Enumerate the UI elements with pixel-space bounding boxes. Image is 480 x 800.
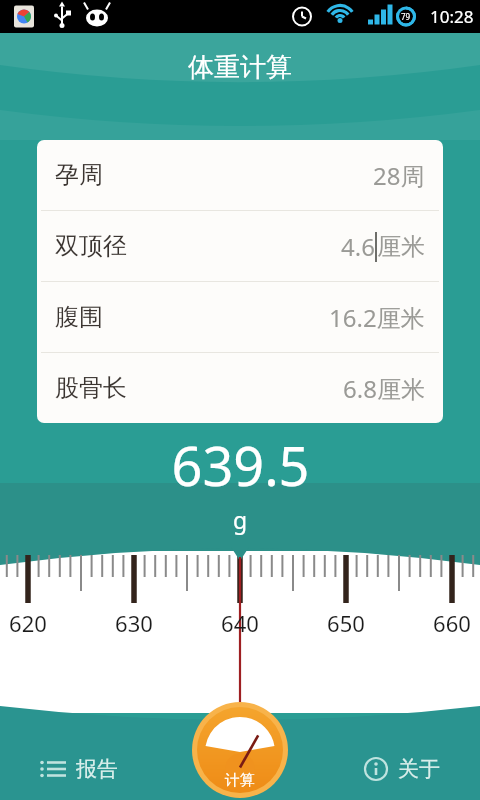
staticText: g: [233, 504, 248, 535]
button[interactable]: 关于: [364, 756, 440, 782]
staticText: 孕周: [55, 160, 103, 190]
staticText: 620: [0, 608, 60, 638]
staticText: 28周: [373, 159, 425, 192]
staticText: 体重计算: [188, 51, 292, 84]
staticText: 660: [420, 608, 480, 638]
staticText: 股骨长: [55, 373, 127, 403]
staticText: 腹围: [55, 302, 103, 332]
staticText: 双顶径: [55, 231, 127, 261]
staticText: 关于: [398, 756, 440, 782]
staticText: 4.6: [341, 230, 375, 263]
staticText: 640: [208, 608, 272, 638]
staticText: 16.2厘米: [329, 301, 425, 334]
button[interactable]: 股骨长: [37, 353, 443, 423]
staticText: 计算: [225, 771, 255, 790]
staticText: 报告: [76, 756, 118, 782]
button[interactable]: 腹围: [37, 282, 443, 352]
staticText: 6.8厘米: [343, 372, 425, 405]
button[interactable]: 报告: [40, 756, 118, 782]
staticText: 10:28: [430, 5, 474, 28]
button[interactable]: 双顶径: [37, 211, 443, 281]
staticText: 650: [314, 608, 378, 638]
staticText: 639.5: [171, 428, 310, 502]
staticText: 厘米: [377, 232, 425, 262]
staticText: 79: [401, 11, 411, 22]
button[interactable]: 计算: [192, 702, 288, 798]
button[interactable]: 孕周: [37, 140, 443, 210]
staticText: 630: [102, 608, 166, 638]
